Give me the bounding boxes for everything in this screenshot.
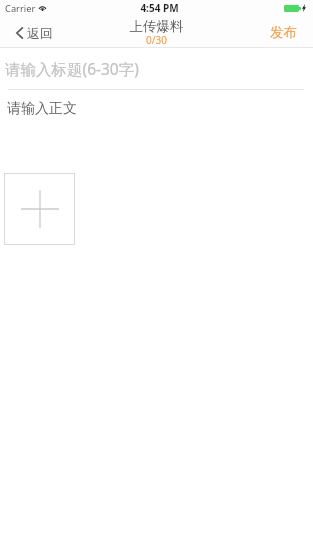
- staticText: 请输入正文: [7, 100, 77, 118]
- staticText: 返回: [27, 25, 53, 41]
- staticText: 4:54 PM: [3, 1, 313, 15]
- staticText: 0/30: [0, 33, 313, 47]
- staticText: 上传爆料: [0, 18, 313, 35]
- button[interactable]: Add photo: [4, 173, 75, 245]
- button[interactable]: 请输入标题(6-30字): [0, 48, 313, 89]
- button[interactable]: 发布: [270, 19, 297, 48]
- button[interactable]: 返回: [16, 19, 53, 48]
- button[interactable]: 请输入正文: [0, 90, 313, 170]
- staticText: Carrier: [5, 2, 36, 15]
- staticText: 发布: [270, 24, 297, 41]
- staticText: 请输入标题(6-30字): [5, 58, 139, 79]
